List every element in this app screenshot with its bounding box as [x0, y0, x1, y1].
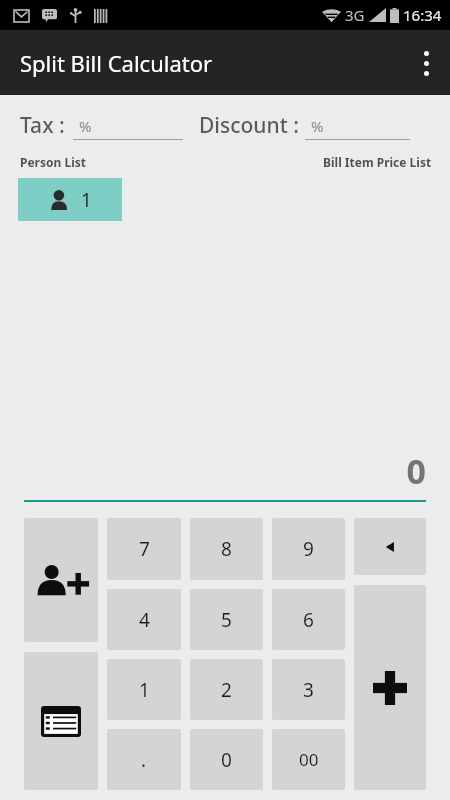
- button[interactable]: %: [305, 116, 410, 140]
- button[interactable]: 3: [272, 659, 345, 720]
- staticText: 16:34: [403, 5, 442, 25]
- button[interactable]: 2: [190, 659, 263, 720]
- staticText: 9: [303, 536, 314, 562]
- button[interactable]: 6: [272, 589, 345, 650]
- button[interactable]: 1: [107, 659, 181, 720]
- button[interactable]: Add person: [24, 518, 98, 642]
- staticText: %: [79, 116, 92, 136]
- button[interactable]: More options: [402, 39, 450, 87]
- button[interactable]: Add: [354, 585, 426, 790]
- staticText: 00: [299, 748, 319, 771]
- staticText: 3: [303, 677, 314, 703]
- staticText: 8: [221, 536, 232, 562]
- staticText: %: [311, 116, 324, 136]
- staticText: 2: [221, 677, 232, 703]
- button[interactable]: Backspace: [354, 518, 426, 575]
- staticText: 1: [81, 187, 92, 213]
- button[interactable]: Bill item list: [24, 652, 98, 790]
- button[interactable]: 1: [18, 178, 122, 221]
- staticText: Split Bill Calculator: [20, 48, 213, 78]
- button[interactable]: 00: [272, 729, 345, 790]
- button[interactable]: .: [107, 729, 181, 790]
- button[interactable]: 8: [190, 518, 263, 580]
- staticText: 6: [303, 607, 314, 633]
- staticText: 0: [221, 747, 232, 773]
- staticText: Person List: [20, 154, 86, 170]
- button[interactable]: 5: [190, 589, 263, 650]
- button[interactable]: 0: [190, 729, 263, 790]
- staticText: Bill Item Price List: [323, 154, 432, 170]
- staticText: 1: [139, 677, 150, 703]
- staticText: 3G: [345, 5, 365, 25]
- button[interactable]: 9: [272, 518, 345, 580]
- button[interactable]: 7: [107, 518, 181, 580]
- staticText: 4: [139, 607, 150, 633]
- staticText: Discount :: [199, 111, 299, 140]
- staticText: 5: [221, 607, 232, 633]
- staticText: 0: [0, 448, 426, 494]
- staticText: .: [141, 747, 147, 773]
- button[interactable]: 4: [107, 589, 181, 650]
- staticText: Tax :: [20, 111, 65, 140]
- button[interactable]: %: [73, 116, 183, 140]
- staticText: 7: [139, 536, 150, 562]
